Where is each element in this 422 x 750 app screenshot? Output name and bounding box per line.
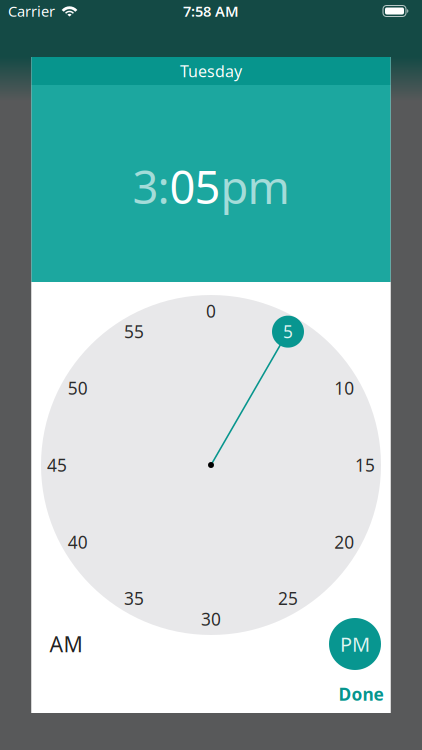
staticText: 3:: [132, 156, 169, 217]
button[interactable]: Done: [338, 682, 383, 705]
staticText: 0: [206, 299, 216, 322]
staticText: 7:58 AM: [183, 1, 239, 21]
staticText: pm: [220, 156, 289, 217]
staticText: 50: [68, 376, 88, 399]
staticText: 35: [124, 587, 144, 610]
staticText: 05: [169, 156, 220, 217]
staticText: 5: [283, 320, 293, 343]
staticText: 45: [47, 453, 67, 476]
staticText: 15: [355, 453, 375, 476]
staticText: 25: [278, 587, 298, 610]
staticText: 10: [334, 376, 354, 399]
staticText: 30: [201, 607, 221, 630]
staticText: 55: [124, 320, 144, 343]
staticText: Carrier: [8, 1, 55, 21]
button[interactable]: AM: [49, 630, 82, 658]
staticText: AM: [49, 630, 82, 658]
staticText: Tuesday: [180, 60, 242, 82]
button[interactable]: PM: [329, 618, 381, 670]
staticText: Done: [338, 682, 383, 705]
staticText: 40: [68, 530, 88, 553]
staticText: 20: [334, 530, 354, 553]
staticText: PM: [340, 631, 370, 657]
